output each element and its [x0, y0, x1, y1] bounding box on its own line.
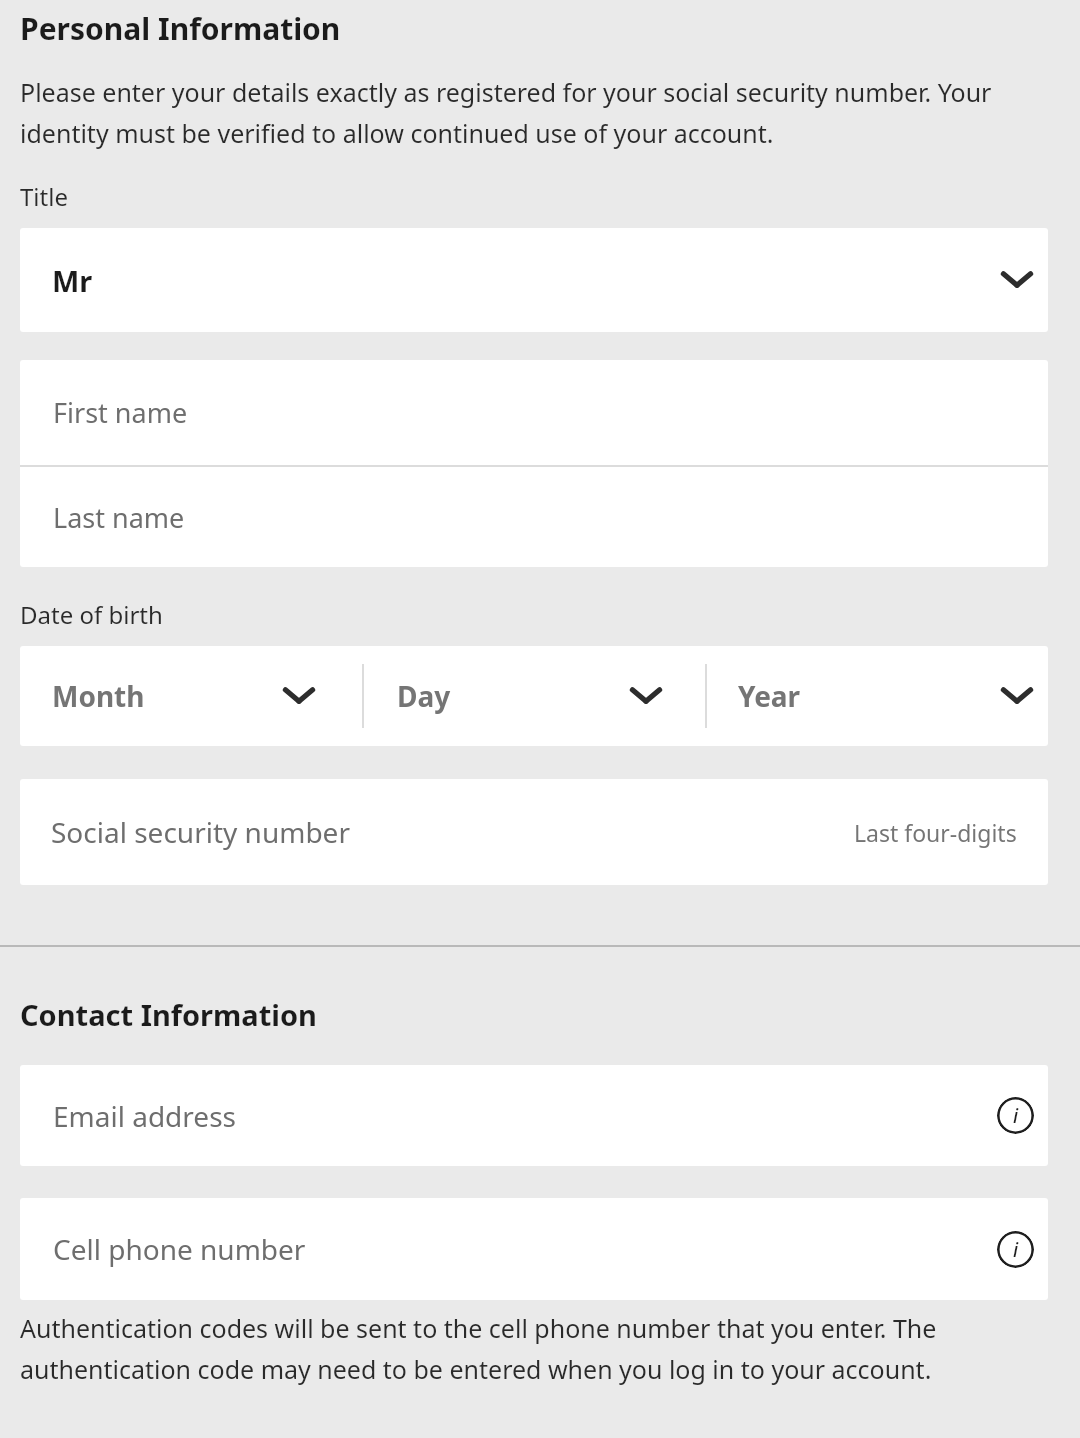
button[interactable]: Mr	[20, 228, 1048, 332]
other: Select day	[629, 685, 663, 707]
staticText: Please enter your details exactly as reg…	[20, 75, 1048, 151]
button[interactable]: Day	[364, 646, 705, 746]
button[interactable]: More information about email address	[997, 1097, 1034, 1134]
staticText: i	[1013, 1103, 1019, 1129]
button[interactable]: Cell phone number	[20, 1198, 1048, 1300]
button[interactable]: Month	[20, 646, 362, 746]
staticText: i	[1013, 1237, 1019, 1263]
staticText: Last name	[53, 499, 185, 536]
button[interactable]: More information about cell phone number	[997, 1231, 1034, 1268]
staticText: Day	[397, 677, 451, 715]
staticText: Year	[738, 677, 801, 715]
button[interactable]: Email address	[20, 1065, 1048, 1166]
button[interactable]: Year	[707, 646, 1048, 746]
other: Select month	[282, 685, 316, 707]
staticText: Cell phone number	[53, 1230, 306, 1268]
staticText: First name	[53, 394, 188, 431]
button[interactable]: First name	[20, 360, 1048, 465]
staticText: Title	[20, 180, 68, 213]
button[interactable]: Social security number	[20, 779, 1048, 885]
other: Select year	[1000, 685, 1034, 707]
staticText: Mr	[52, 261, 93, 300]
staticText: Date of birth	[20, 598, 163, 631]
staticText: Social security number	[51, 813, 350, 851]
staticText: Email address	[53, 1097, 236, 1135]
other: Open title list	[1000, 269, 1034, 291]
staticText: Last four-digits	[854, 817, 1017, 848]
button[interactable]: Last name	[20, 467, 1048, 567]
staticText: Contact Information	[20, 995, 317, 1034]
staticText: Personal Information	[20, 8, 341, 49]
staticText: Month	[52, 677, 145, 715]
staticText: Authentication codes will be sent to the…	[20, 1311, 1040, 1387]
